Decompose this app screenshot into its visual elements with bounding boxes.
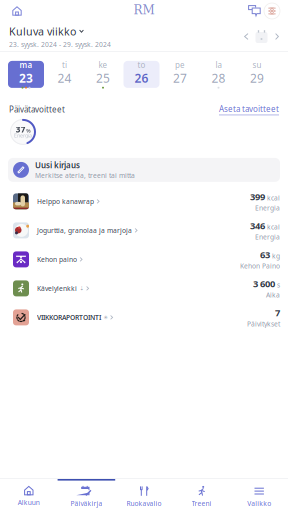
staticText: Päiväkirja: [70, 499, 102, 508]
button[interactable]: Ruokavalio: [115, 479, 173, 512]
staticText: ✳: [103, 314, 107, 320]
staticText: 3 600: [253, 277, 275, 290]
button[interactable]: Home: [8, 2, 26, 20]
button[interactable]: la: [200, 61, 236, 88]
button[interactable]: ma: [8, 61, 44, 88]
staticText: ma: [19, 60, 32, 70]
staticText: 399: [250, 190, 265, 203]
staticText: Uusi kirjaus: [35, 160, 80, 170]
staticText: s: [277, 281, 280, 289]
staticText: 26: [134, 70, 148, 86]
staticText: Energia: [14, 132, 32, 139]
button[interactable]: Profile: [264, 3, 280, 19]
button[interactable]: Kehon paino: [0, 245, 288, 274]
staticText: 346: [250, 219, 265, 232]
staticText: 63: [260, 248, 270, 261]
staticText: 28: [211, 70, 225, 86]
button[interactable]: VIIKKORAPORTOINTI: [0, 303, 288, 332]
staticText: pe: [175, 60, 185, 70]
staticText: Energia: [255, 232, 280, 241]
staticText: Jogurttia, granolaa ja marjoja: [37, 226, 132, 235]
staticText: Energia: [255, 203, 280, 212]
button[interactable]: Jogurttia, granolaa ja marjoja: [0, 216, 288, 245]
button[interactable]: Previous week: [244, 33, 248, 40]
staticText: Kävelylenkki: [37, 284, 77, 293]
button[interactable]: ti: [46, 61, 82, 88]
staticText: Alkuun: [18, 498, 40, 507]
button[interactable]: Aseta tavoitteet: [219, 104, 279, 115]
button[interactable]: Treeni: [173, 479, 230, 512]
staticText: 29: [250, 70, 264, 86]
staticText: 24: [57, 70, 71, 86]
button[interactable]: Pick date: [255, 29, 268, 43]
staticText: Päivitykset: [247, 319, 280, 328]
staticText: Kuluva viikko: [9, 24, 76, 38]
staticText: Päivätavoitteet: [9, 104, 65, 115]
staticText: Aseta tavoitteet: [219, 104, 279, 114]
button[interactable]: Uusi kirjaus: [8, 158, 280, 182]
button[interactable]: to: [123, 61, 159, 88]
staticText: Helppo kanawrap: [37, 197, 94, 206]
staticText: ti: [62, 60, 67, 70]
staticText: kcal: [267, 194, 280, 202]
staticText: Valikko: [247, 499, 271, 508]
button[interactable]: Päiväkirja: [58, 479, 115, 512]
staticText: Merkitse ateria, treeni tai mitta: [35, 171, 135, 180]
staticText: 7: [275, 306, 280, 319]
staticText: %: [26, 127, 30, 134]
staticText: 37: [16, 124, 26, 135]
button[interactable]: ke: [85, 61, 121, 88]
button[interactable]: Helppo kanawrap: [0, 187, 288, 216]
staticText: 25: [96, 70, 110, 86]
staticText: ke: [98, 60, 107, 70]
staticText: kg: [272, 252, 280, 260]
button[interactable]: Valikko: [230, 479, 288, 512]
staticText: ⇣: [79, 285, 83, 291]
staticText: RM: [133, 3, 154, 17]
button[interactable]: Alkuun: [0, 479, 58, 512]
button[interactable]: Kuluva viikko: [9, 24, 84, 38]
staticText: su: [252, 60, 261, 70]
staticText: kcal: [267, 223, 280, 231]
staticText: 23. syysk. 2024 - 29. syysk. 2024: [9, 40, 111, 49]
staticText: la: [215, 60, 221, 70]
button[interactable]: pe: [162, 61, 198, 88]
staticText: Kehon Paino: [240, 261, 280, 270]
button[interactable]: su: [239, 61, 275, 88]
button[interactable]: Messages: [247, 4, 262, 18]
staticText: VIIKKORAPORTOINTI: [37, 313, 101, 322]
staticText: Kehon paino: [37, 255, 77, 264]
staticText: Ruokavalio: [126, 499, 161, 508]
staticText: 27: [173, 70, 187, 86]
staticText: Treeni: [192, 499, 212, 508]
button[interactable]: Next week: [275, 33, 279, 40]
staticText: to: [137, 60, 145, 70]
button[interactable]: Kävelylenkki: [0, 274, 288, 303]
staticText: Aika: [266, 290, 280, 299]
staticText: 23: [19, 70, 33, 86]
